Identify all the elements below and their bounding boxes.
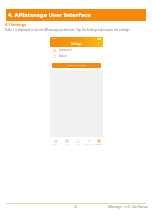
staticText: 4. APIstorage User Interface xyxy=(8,11,91,19)
button[interactable]: About xyxy=(50,53,103,59)
button[interactable]: Jobs xyxy=(72,137,83,145)
button[interactable]: CHECK FOR UPDATES xyxy=(52,63,101,68)
button[interactable]: Advanced xyxy=(50,47,103,53)
button[interactable]: Transfers xyxy=(83,137,94,145)
staticText: Home xyxy=(53,143,58,145)
staticText: Table 1 is displayed to set the APIstora… xyxy=(5,28,141,32)
button[interactable]: Files xyxy=(61,137,72,145)
staticText: Advanced xyxy=(59,48,72,52)
staticText: Settings xyxy=(71,42,82,46)
staticText: APIstorage | v1.0 | User Manual xyxy=(108,205,148,209)
staticText: Settings xyxy=(95,143,102,145)
staticText: 4.1 Settings xyxy=(5,22,26,27)
staticText: 26 xyxy=(74,205,77,209)
button[interactable]: Settings xyxy=(94,137,103,145)
staticText: Files xyxy=(65,143,69,145)
staticText: 9:41 xyxy=(52,37,56,40)
staticText: Jobs xyxy=(76,143,80,145)
button[interactable]: Home xyxy=(50,137,61,145)
staticText: CHECK FOR UPDATES xyxy=(67,64,87,67)
staticText: About xyxy=(59,54,67,58)
staticText: Transfers xyxy=(85,143,93,145)
